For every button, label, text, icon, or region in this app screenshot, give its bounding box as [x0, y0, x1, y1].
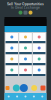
button[interactable]: Tab	[30, 93, 38, 100]
button[interactable]: Product card	[33, 66, 45, 76]
button[interactable]: Product card	[19, 33, 32, 43]
staticText: Sell Your Opportunities	[7, 2, 44, 6]
staticText: In Great Exchange	[11, 6, 40, 9]
button[interactable]: Product card	[33, 55, 45, 65]
button[interactable]: Product card	[5, 44, 18, 54]
button[interactable]: Product card	[19, 55, 32, 65]
button[interactable]: Tab	[4, 93, 13, 100]
button[interactable]: Product card	[33, 33, 45, 43]
button[interactable]: Product card	[19, 44, 32, 54]
button[interactable]: Product card	[19, 66, 32, 76]
button[interactable]: Tab	[38, 93, 46, 100]
button[interactable]: Product card	[5, 33, 18, 43]
button[interactable]: Product card	[33, 44, 45, 54]
button[interactable]: Tab	[21, 93, 30, 100]
button[interactable]: Tab	[13, 93, 21, 100]
button[interactable]: Product card	[5, 66, 18, 76]
button[interactable]: Product card	[5, 55, 18, 65]
